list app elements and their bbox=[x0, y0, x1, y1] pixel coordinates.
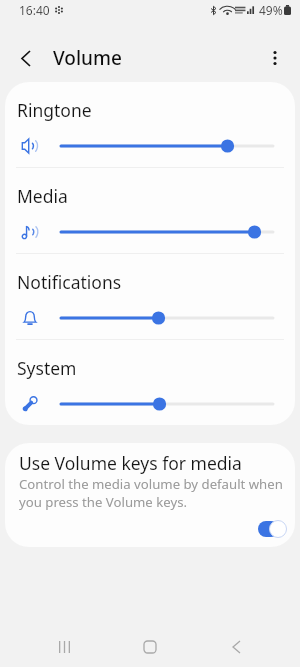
button[interactable]: Home bbox=[128, 627, 172, 667]
staticText: Control the media volume by default when bbox=[19, 475, 287, 493]
button[interactable]: Navigate up bbox=[2, 34, 50, 82]
staticText: Use Volume keys for media bbox=[19, 451, 242, 475]
staticText: Ringtone bbox=[17, 98, 92, 122]
staticText: 16:40 bbox=[19, 2, 50, 18]
staticText: System bbox=[17, 356, 77, 380]
staticText: Volume bbox=[53, 45, 122, 71]
button[interactable]: Media bbox=[5, 168, 295, 253]
button[interactable]: Ringtone bbox=[5, 82, 295, 167]
staticText: Media bbox=[17, 184, 68, 208]
button[interactable]: More options bbox=[254, 37, 296, 79]
button[interactable]: Use Volume keys for media bbox=[258, 520, 287, 538]
button[interactable]: System bbox=[5, 340, 295, 425]
staticText: you press the Volume keys. bbox=[19, 493, 287, 511]
button[interactable]: Back bbox=[214, 627, 258, 667]
button[interactable]: Notifications bbox=[5, 254, 295, 339]
staticText: 49% bbox=[259, 2, 283, 18]
staticText: Notifications bbox=[17, 270, 122, 294]
button[interactable]: Use Volume keys for media bbox=[5, 443, 295, 547]
button[interactable]: Recent apps bbox=[42, 627, 86, 667]
